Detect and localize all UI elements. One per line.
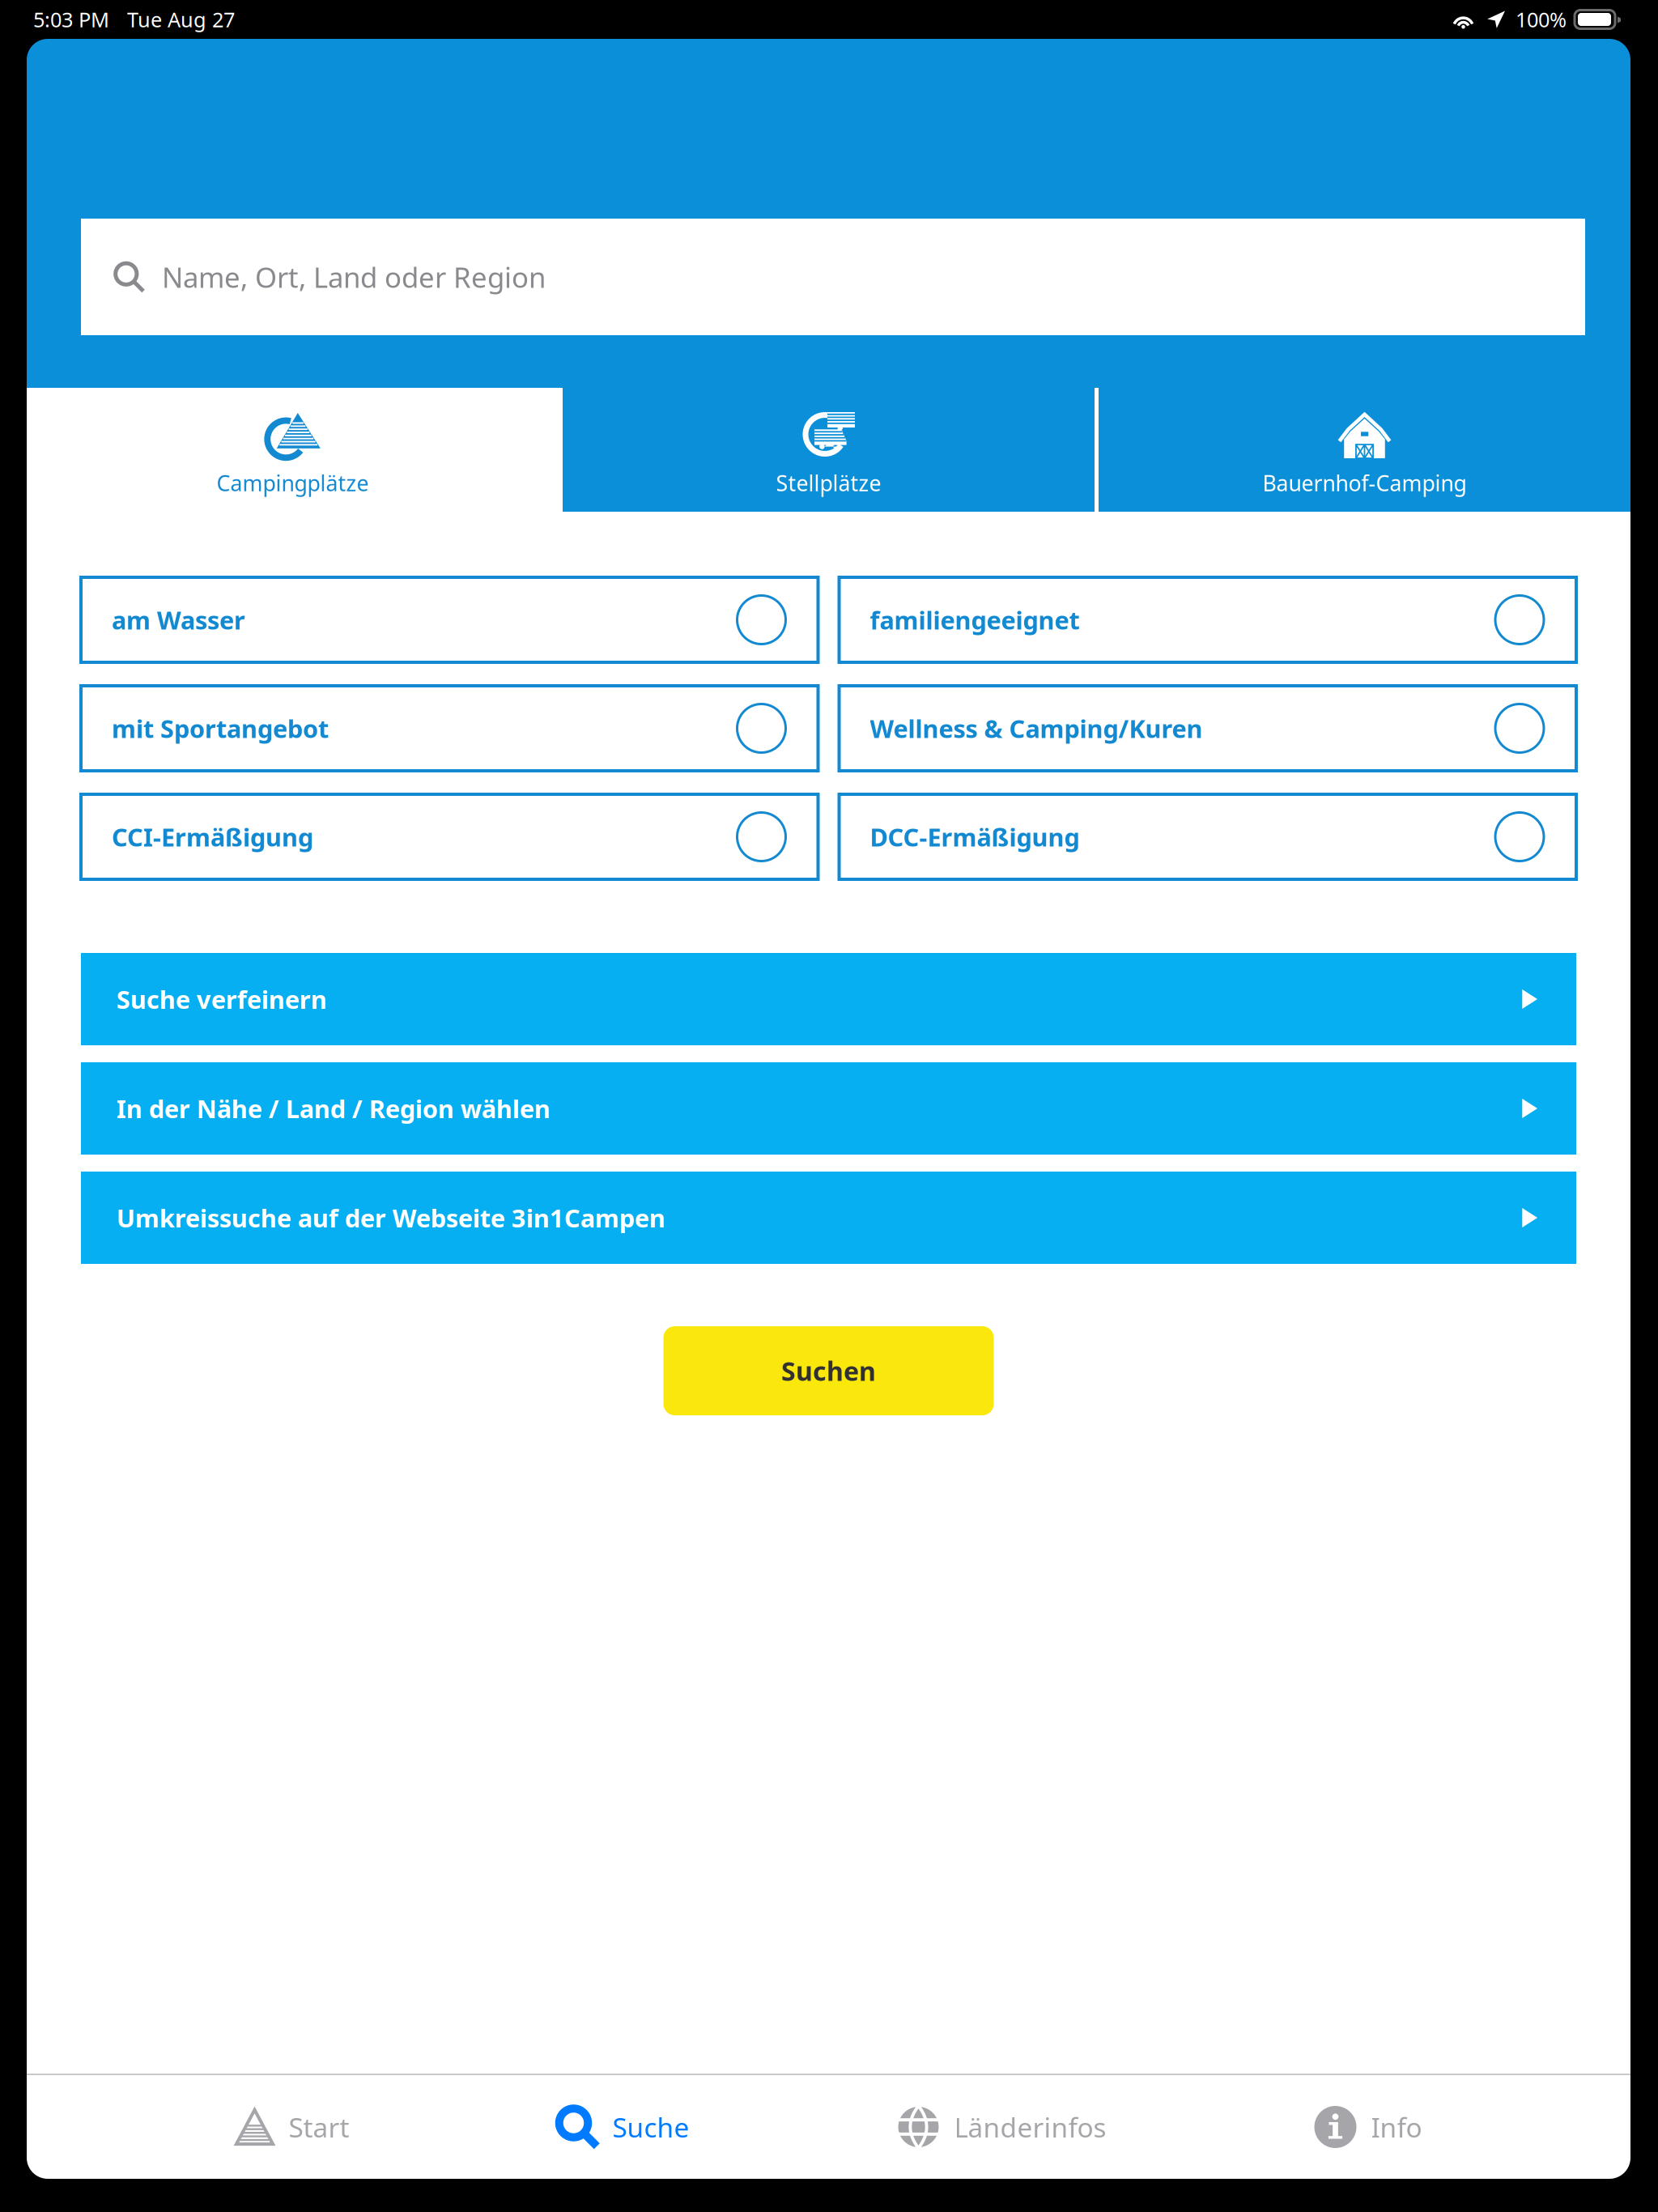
staticText: Länderinfos bbox=[954, 2109, 1106, 2145]
staticText: Info bbox=[1371, 2109, 1422, 2145]
button[interactable]: Wellness & Camping/Kuren bbox=[839, 686, 1576, 771]
staticText: Campingplätze bbox=[217, 468, 369, 497]
button[interactable]: In der Nähe / Land / Region wählen bbox=[81, 1062, 1576, 1155]
button[interactable]: Campingplätze bbox=[27, 388, 559, 512]
button[interactable]: CCI-Ermäßigung bbox=[81, 794, 818, 879]
button[interactable]: Umkreissuche auf der Webseite 3in1Campen bbox=[81, 1172, 1576, 1264]
staticText: 100% bbox=[1516, 6, 1567, 33]
staticText: Stellplätze bbox=[776, 468, 881, 497]
button[interactable]: Länderinfos bbox=[897, 2075, 1106, 2179]
button[interactable]: mit Sportangebot bbox=[81, 686, 818, 771]
button[interactable]: am Wasser bbox=[81, 577, 818, 662]
staticText: Tue Aug 27 bbox=[127, 6, 235, 33]
staticText: Wellness & Camping/Kuren bbox=[870, 712, 1203, 745]
staticText: Suche verfeinern bbox=[117, 983, 327, 1016]
staticText: 5:03 PM bbox=[33, 6, 109, 33]
button[interactable]: DCC-Ermäßigung bbox=[839, 794, 1576, 879]
button[interactable]: Suche verfeinern bbox=[81, 953, 1576, 1045]
staticText: Name, Ort, Land oder Region bbox=[162, 258, 546, 296]
staticText: In der Nähe / Land / Region wählen bbox=[117, 1092, 551, 1125]
button[interactable]: familiengeeignet bbox=[839, 577, 1576, 662]
staticText: CCI-Ermäßigung bbox=[112, 820, 313, 853]
staticText: familiengeeignet bbox=[870, 603, 1080, 636]
button[interactable]: Suche bbox=[557, 2075, 689, 2179]
staticText: DCC-Ermäßigung bbox=[870, 820, 1080, 853]
staticText: Suche bbox=[612, 2109, 689, 2145]
staticText: Umkreissuche auf der Webseite 3in1Campen bbox=[117, 1201, 665, 1234]
button[interactable]: Start bbox=[235, 2075, 349, 2179]
button[interactable]: Stellplätze bbox=[563, 388, 1095, 512]
staticText: Bauernhof-Camping bbox=[1263, 468, 1467, 497]
staticText: Suchen bbox=[781, 1354, 876, 1388]
staticText: Start bbox=[289, 2109, 349, 2145]
button[interactable]: Bauernhof-Camping bbox=[1099, 388, 1630, 512]
staticText: mit Sportangebot bbox=[112, 712, 329, 745]
button[interactable]: Info bbox=[1314, 2075, 1422, 2179]
staticText: am Wasser bbox=[112, 603, 245, 636]
button[interactable]: Suchen bbox=[663, 1326, 994, 1415]
button[interactable]: Suchfeld: Name, Ort, Land oder Region bbox=[81, 219, 1585, 335]
